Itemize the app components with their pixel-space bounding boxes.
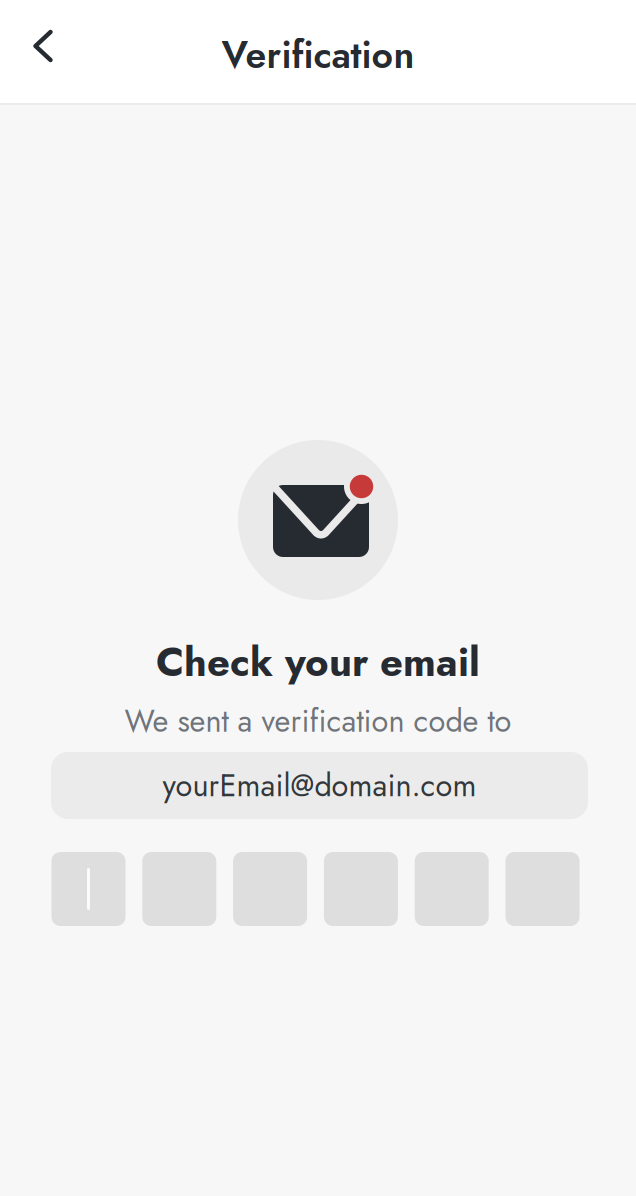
staticText: We sent a verification code to <box>124 699 511 743</box>
staticText: yourEmail@domain.com <box>162 763 476 808</box>
button[interactable]: yourEmail@domain.com <box>51 752 588 819</box>
button[interactable]: Verification code digit 1 <box>51 852 125 926</box>
button[interactable]: Back <box>14 17 72 75</box>
staticText: Verification <box>221 28 414 82</box>
staticText: Check your email <box>156 633 480 691</box>
